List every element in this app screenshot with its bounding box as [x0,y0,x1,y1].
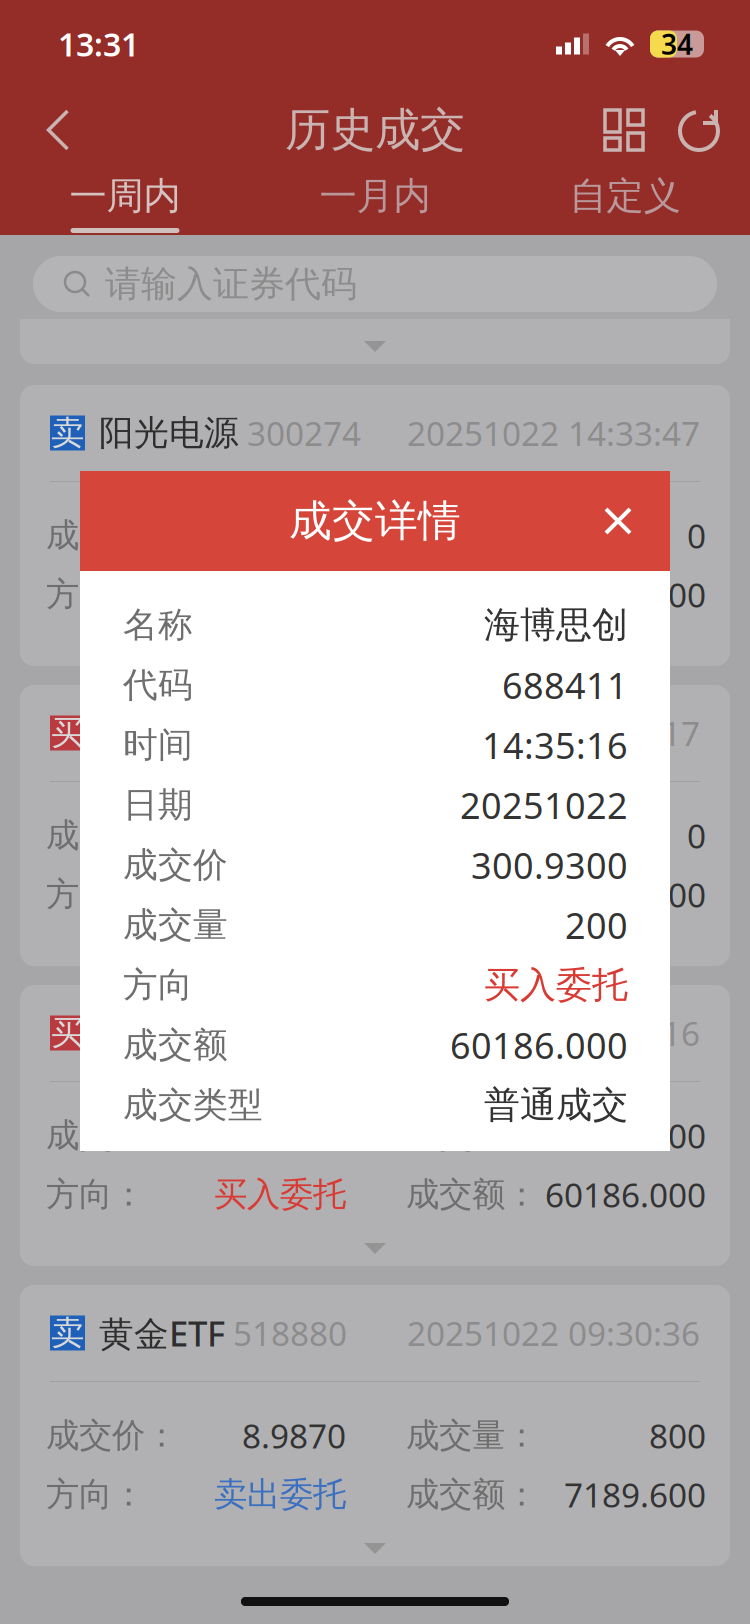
staticText: 13:31 [58,23,139,65]
button[interactable]: Close [588,491,648,551]
staticText: 方向： [46,874,145,915]
staticText: 海博思创 [99,1012,239,1054]
staticText: 20251022 14:33:47 [407,411,700,455]
staticText: 卖出委托 [214,1474,346,1515]
staticText: 方向： [46,1474,145,1515]
staticText: 200 [649,1113,706,1158]
staticText: 海博思创 [484,603,628,647]
staticText: 买入委托 [214,874,346,915]
staticText: 20251022 14:35:17 [407,711,700,755]
staticText: 0.000 [621,572,706,617]
staticText: 方向 [123,964,193,1006]
staticText: 成交额： [406,1174,538,1215]
staticText: 300.9300 [471,841,628,889]
button[interactable]: 自定义 [500,172,750,235]
staticText: 一周内 [69,173,180,219]
staticText: 0.000 [621,872,706,917]
staticText: 0.0000 [242,513,346,558]
staticText: 成交量： [406,515,538,556]
staticText: 成交价： [46,815,178,856]
staticText: 0 [687,513,706,558]
staticText: 日期 [123,784,193,826]
button[interactable]: 请输入证券代码 [0,235,750,312]
staticText: 自定义 [569,173,680,219]
staticText: 成交价： [46,1115,178,1156]
staticText: 0 [687,813,706,858]
staticText: 20251022 09:30:36 [407,1311,700,1355]
staticText: 方向： [46,1174,145,1215]
staticText: 代码 [123,664,193,706]
staticText: 成交额 [123,1024,228,1066]
staticText: 请输入证券代码 [105,262,357,306]
staticText: 一月内 [319,173,430,219]
staticText: 34 [661,25,693,63]
staticText: 成交量： [406,1115,538,1156]
staticText: 成交额： [406,574,538,615]
staticText: 成交额： [406,874,538,915]
staticText: 成交价： [46,515,178,556]
staticText: 买 [51,712,84,753]
staticText: 时间 [123,724,193,766]
staticText: 卖 [51,412,84,453]
staticText: 成交详情 [289,495,461,547]
button[interactable]: Back [20,88,96,172]
staticText: 历史成交 [285,102,465,158]
staticText: 名称 [123,604,193,646]
staticText: 阳光电源 [99,412,239,454]
staticText: 普通成交 [484,1083,628,1127]
staticText: 买入委托 [484,963,628,1007]
staticText: 14:35:16 [482,721,628,769]
staticText: 成交量： [406,1415,538,1456]
staticText: 518880 [233,1311,347,1355]
staticText: 方向： [46,574,145,615]
staticText: 688411 [502,661,628,709]
staticText: 800 [649,1413,706,1458]
staticText: 卖 [51,1312,84,1353]
staticText: 20251022 14:35:16 [407,1011,700,1055]
staticText: 60186.000 [545,1172,706,1217]
staticText: 买入委托 [214,1174,346,1215]
staticText: 成交价 [123,844,228,886]
staticText: 成交额： [406,1474,538,1515]
staticText: 成交类型 [123,1084,263,1126]
staticText: 成交价： [46,1415,178,1456]
staticText: 8.9870 [242,1413,346,1458]
staticText: 200 [565,901,628,949]
staticText: 300274 [247,411,361,455]
button[interactable]: 一月内 [250,172,500,235]
button[interactable]: Refresh [662,88,738,172]
staticText: 7189.600 [564,1472,706,1517]
staticText: 成交量： [406,815,538,856]
staticText: 300.9300 [204,1113,346,1158]
staticText: 海博思创 [99,712,239,754]
staticText: 60186.000 [450,1021,628,1069]
staticText: 成交量 [123,904,228,946]
button[interactable]: 一周内 [0,172,250,235]
staticText: 买 [51,1012,84,1053]
staticText: 20251022 [460,781,628,829]
button[interactable]: Layout [586,88,662,172]
staticText: 黄金ETF [99,1310,225,1356]
